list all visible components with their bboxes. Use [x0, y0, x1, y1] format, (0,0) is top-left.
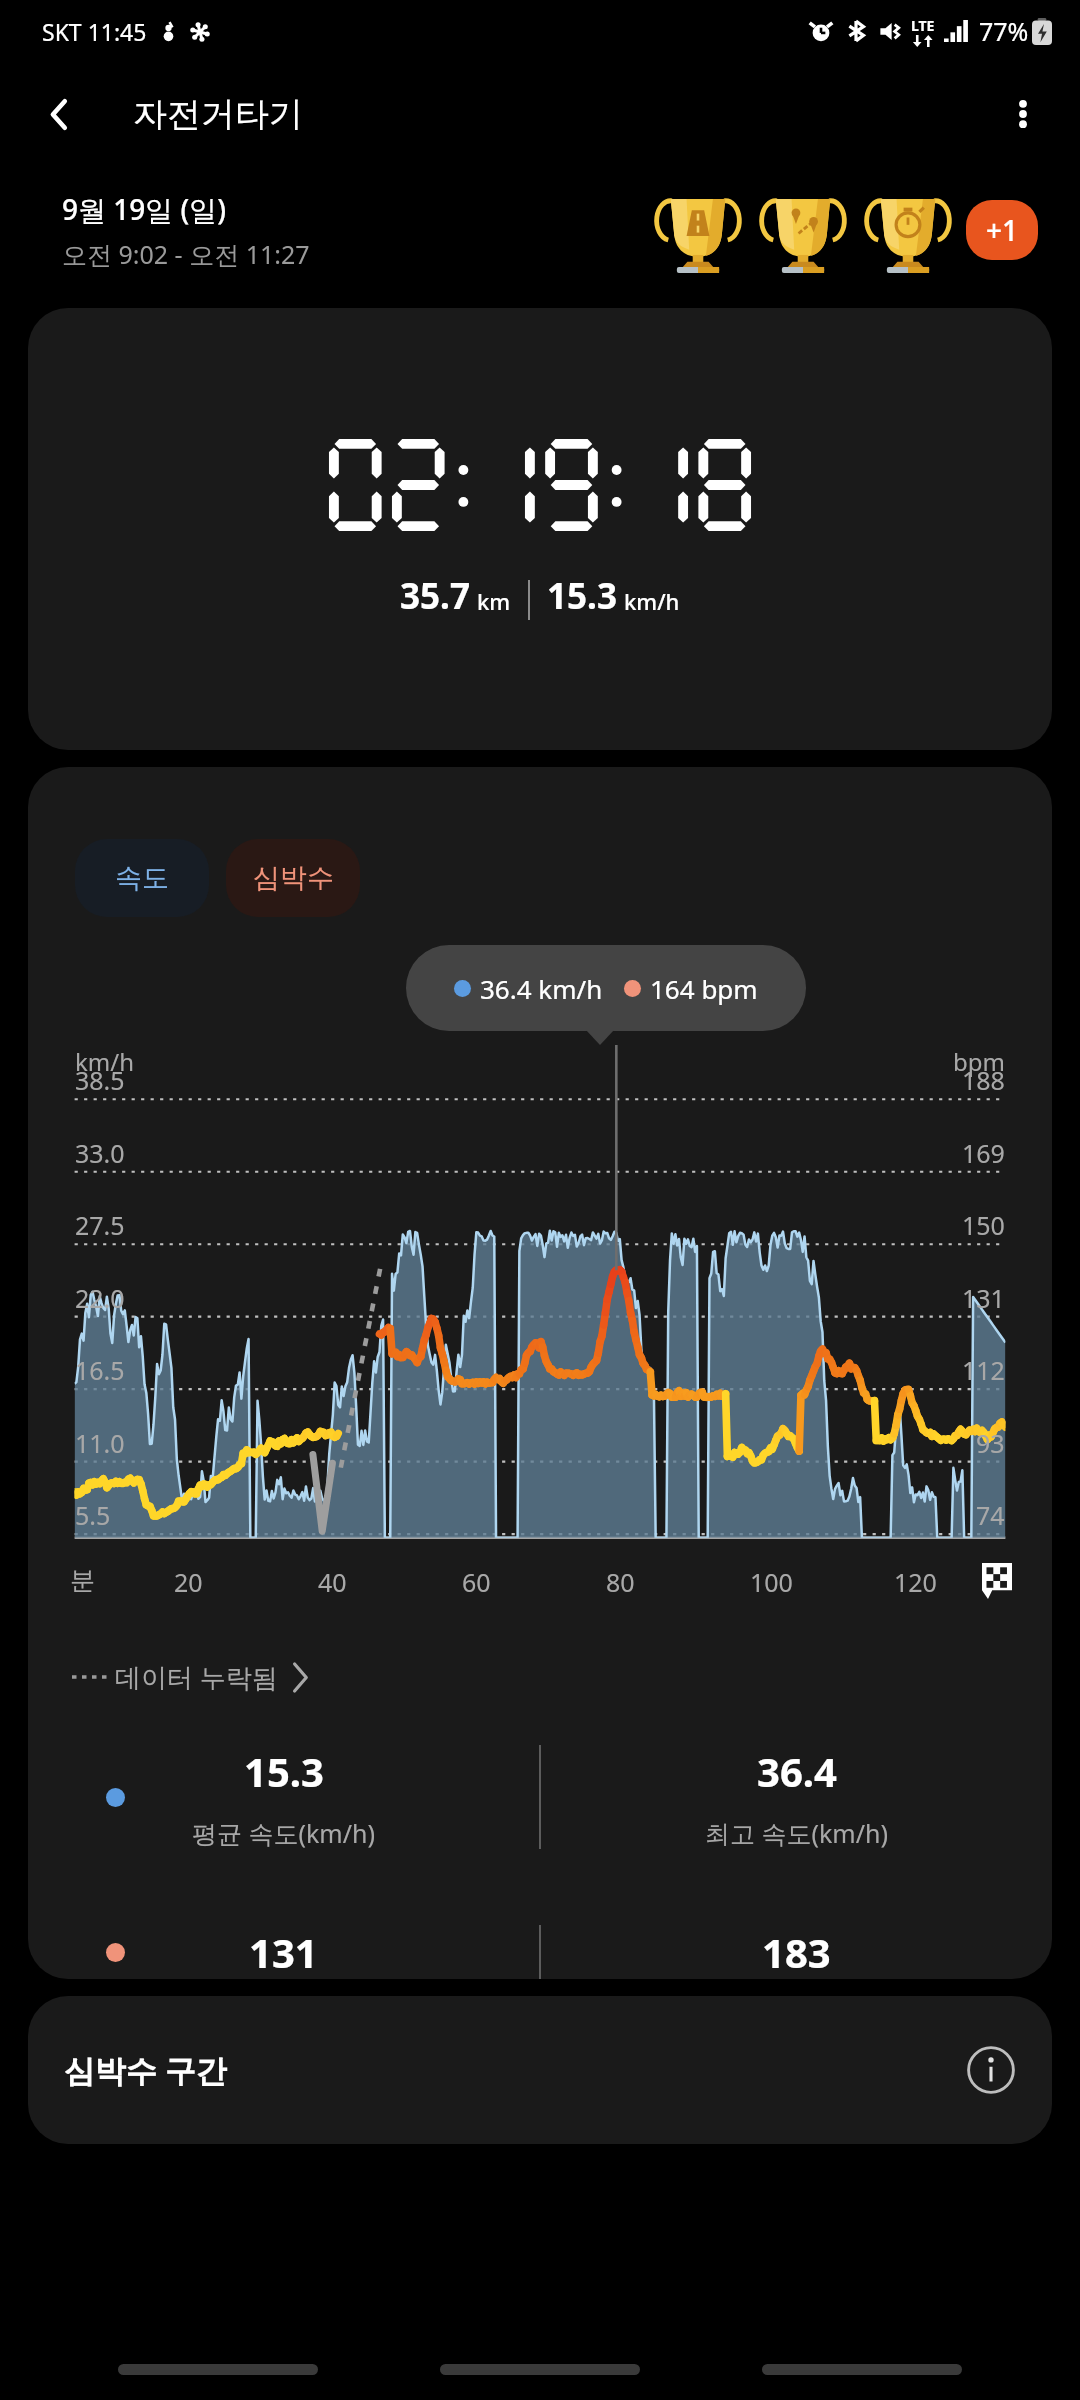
staticText: 112: [962, 1353, 1005, 1387]
button[interactable]: Information: [958, 2037, 1024, 2103]
button[interactable]: Navigation: [762, 2364, 962, 2375]
staticText: 169: [962, 1136, 1005, 1170]
button[interactable]: Back: [26, 81, 92, 147]
button[interactable]: +1: [966, 200, 1038, 260]
button[interactable]: Navigation: [118, 2364, 318, 2375]
staticText: bpm: [953, 1045, 1005, 1078]
staticText: 평균 속도(km/h): [192, 1816, 375, 1850]
staticText: 120: [894, 1565, 937, 1599]
staticText: 164 bpm: [650, 971, 758, 1006]
staticText: 최고 속도(km/h): [705, 1816, 888, 1850]
staticText: 오전 9:02 - 오전 11:27: [62, 237, 310, 271]
staticText: 35.7: [400, 572, 470, 620]
button[interactable]: Achievement badge: [759, 187, 847, 273]
staticText: 분: [70, 1565, 95, 1596]
staticText: 20: [174, 1565, 203, 1599]
staticText: 93: [976, 1426, 1005, 1460]
button[interactable]: 데이터 누락됨: [68, 1655, 313, 1699]
staticText: LTE: [911, 16, 935, 35]
staticText: 자전거타기: [133, 93, 303, 136]
staticText: 22.0: [75, 1281, 125, 1315]
staticText: 36.4 km/h: [480, 971, 603, 1006]
staticText: +1: [986, 211, 1019, 249]
staticText: 131: [962, 1281, 1005, 1315]
staticText: 16.5: [75, 1353, 125, 1387]
staticText: 데이터 누락됨: [115, 1659, 278, 1695]
staticText: 11.0: [75, 1426, 125, 1460]
button[interactable]: Achievement badge: [864, 187, 952, 273]
staticText: 속도: [115, 861, 169, 895]
staticText: 15.3: [244, 1744, 324, 1798]
staticText: SKT 11:45: [42, 16, 147, 47]
staticText: km: [477, 586, 511, 616]
staticText: 77%: [979, 14, 1029, 48]
staticText: 188: [962, 1063, 1005, 1097]
staticText: 36.4: [757, 1744, 837, 1798]
staticText: 9월 19일 (일): [62, 190, 227, 228]
staticText: 40: [318, 1565, 347, 1599]
staticText: 80: [606, 1565, 635, 1599]
staticText: 131: [249, 1925, 318, 1979]
staticText: 74: [976, 1498, 1005, 1532]
staticText: 38.5: [75, 1063, 125, 1097]
button[interactable]: 속도: [75, 839, 209, 917]
staticText: 33.0: [75, 1136, 125, 1170]
staticText: km/h: [75, 1045, 135, 1078]
staticText: 100: [750, 1565, 793, 1599]
button[interactable]: 심박수: [226, 839, 360, 917]
staticText: 심박수 구간: [64, 2049, 228, 2091]
staticText: 27.5: [75, 1208, 125, 1242]
button[interactable]: More options: [990, 81, 1056, 147]
button[interactable]: 심박수 구간: [28, 1996, 1052, 2144]
staticText: 183: [762, 1925, 831, 1979]
staticText: 5.5: [75, 1498, 111, 1532]
staticText: 심박수: [253, 861, 334, 895]
staticText: 60: [462, 1565, 491, 1599]
staticText: 15.3: [547, 572, 617, 620]
staticText: 150: [962, 1208, 1005, 1242]
button[interactable]: Navigation: [440, 2364, 640, 2375]
staticText: km/h: [624, 586, 680, 616]
button[interactable]: Achievement badge: [654, 187, 742, 273]
button[interactable]: 35.7: [28, 308, 1052, 750]
